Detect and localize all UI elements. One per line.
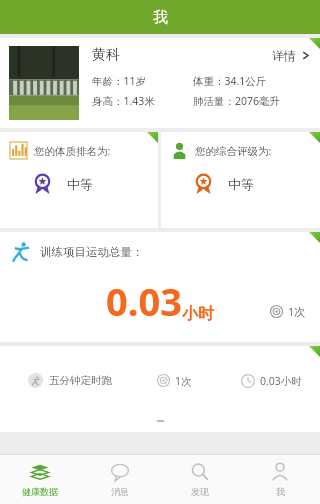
staticText: 消息: [111, 486, 129, 497]
button[interactable]: 健康数据: [0, 455, 80, 504]
staticText: 发现: [191, 486, 209, 497]
button[interactable]: 黄科: [0, 38, 320, 128]
staticText: 小时: [182, 304, 214, 324]
button[interactable]: 发现: [160, 455, 240, 504]
button[interactable]: 五分钟定时跑: [0, 373, 320, 388]
staticText: 训练项目运动总量：: [40, 245, 144, 259]
staticText: 身高：1.43米: [92, 94, 155, 108]
staticText: 您的综合评级为:: [195, 144, 272, 158]
staticText: 肺活量：2076毫升: [193, 94, 281, 108]
staticText: 我: [153, 8, 168, 27]
staticText: 1次: [175, 374, 192, 388]
staticText: 黄科: [92, 46, 120, 64]
button[interactable]: 消息: [80, 455, 160, 504]
staticText: 0.03: [106, 275, 182, 327]
staticText: 中等: [228, 176, 254, 192]
staticText: 0.03小时: [260, 374, 302, 388]
staticText: 年龄：11岁: [92, 74, 147, 88]
staticText: 1次: [288, 304, 306, 319]
staticText: 健康数据: [22, 486, 58, 497]
staticText: 五分钟定时跑: [49, 374, 112, 387]
button[interactable]: 我: [240, 455, 320, 504]
button[interactable]: 训练项目运动总量：: [0, 232, 320, 342]
staticText: 您的体质排名为:: [34, 144, 111, 158]
button[interactable]: 您的综合评级为:: [161, 132, 320, 228]
staticText: 中等: [67, 176, 93, 192]
staticText: 体重：34.1公斤: [193, 74, 267, 88]
staticText: 我: [276, 486, 285, 497]
staticText: 详情: [272, 48, 296, 63]
button[interactable]: 您的体质排名为:: [0, 132, 158, 228]
button[interactable]: 详情: [272, 48, 310, 63]
